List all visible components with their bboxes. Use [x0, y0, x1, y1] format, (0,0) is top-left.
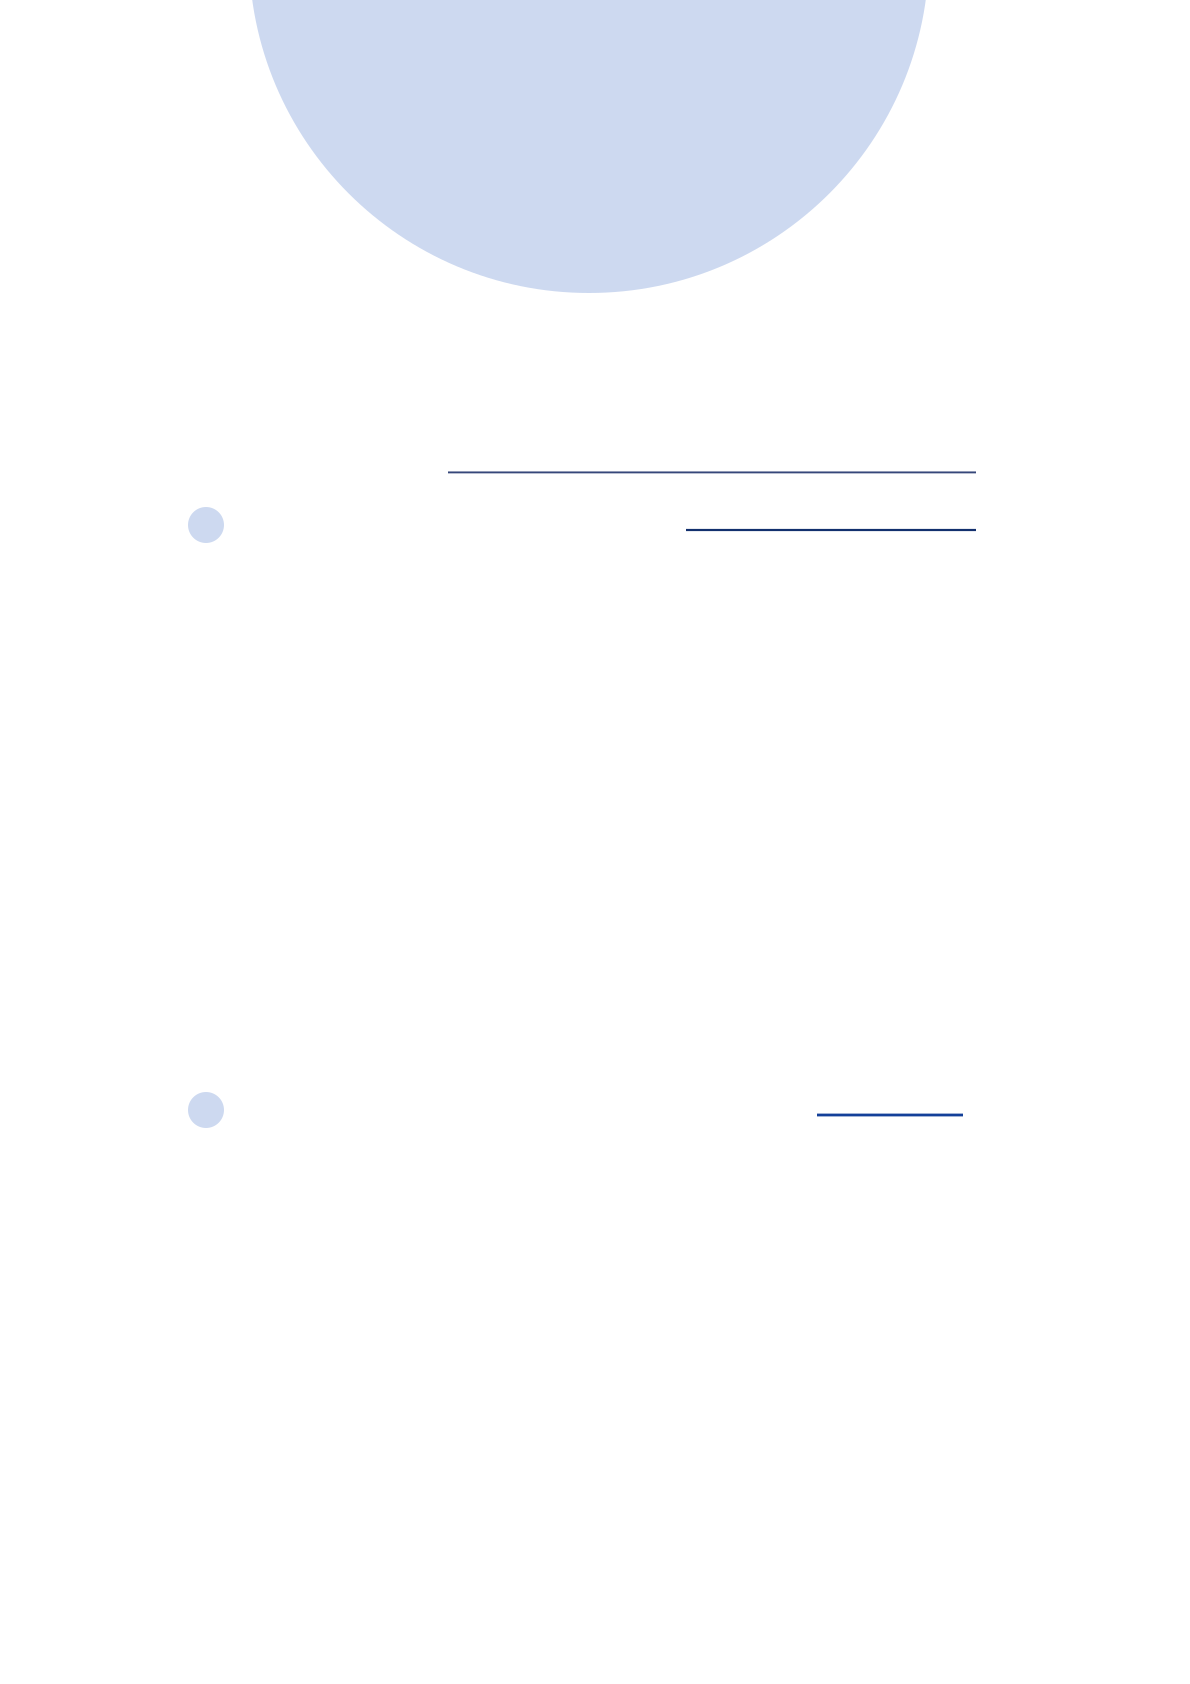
button[interactable]: Hey — are we still on for tomorrow morni… — [0, 0, 1190, 1684]
staticText: I can move things around if not — [497, 478, 1164, 538]
staticText: Yes, see you then — [705, 1063, 1074, 1123]
staticText: Hey — are we still on for tomorrow morni… — [231, 420, 1190, 480]
button[interactable]: Yes, see you then — [0, 0, 1190, 1684]
